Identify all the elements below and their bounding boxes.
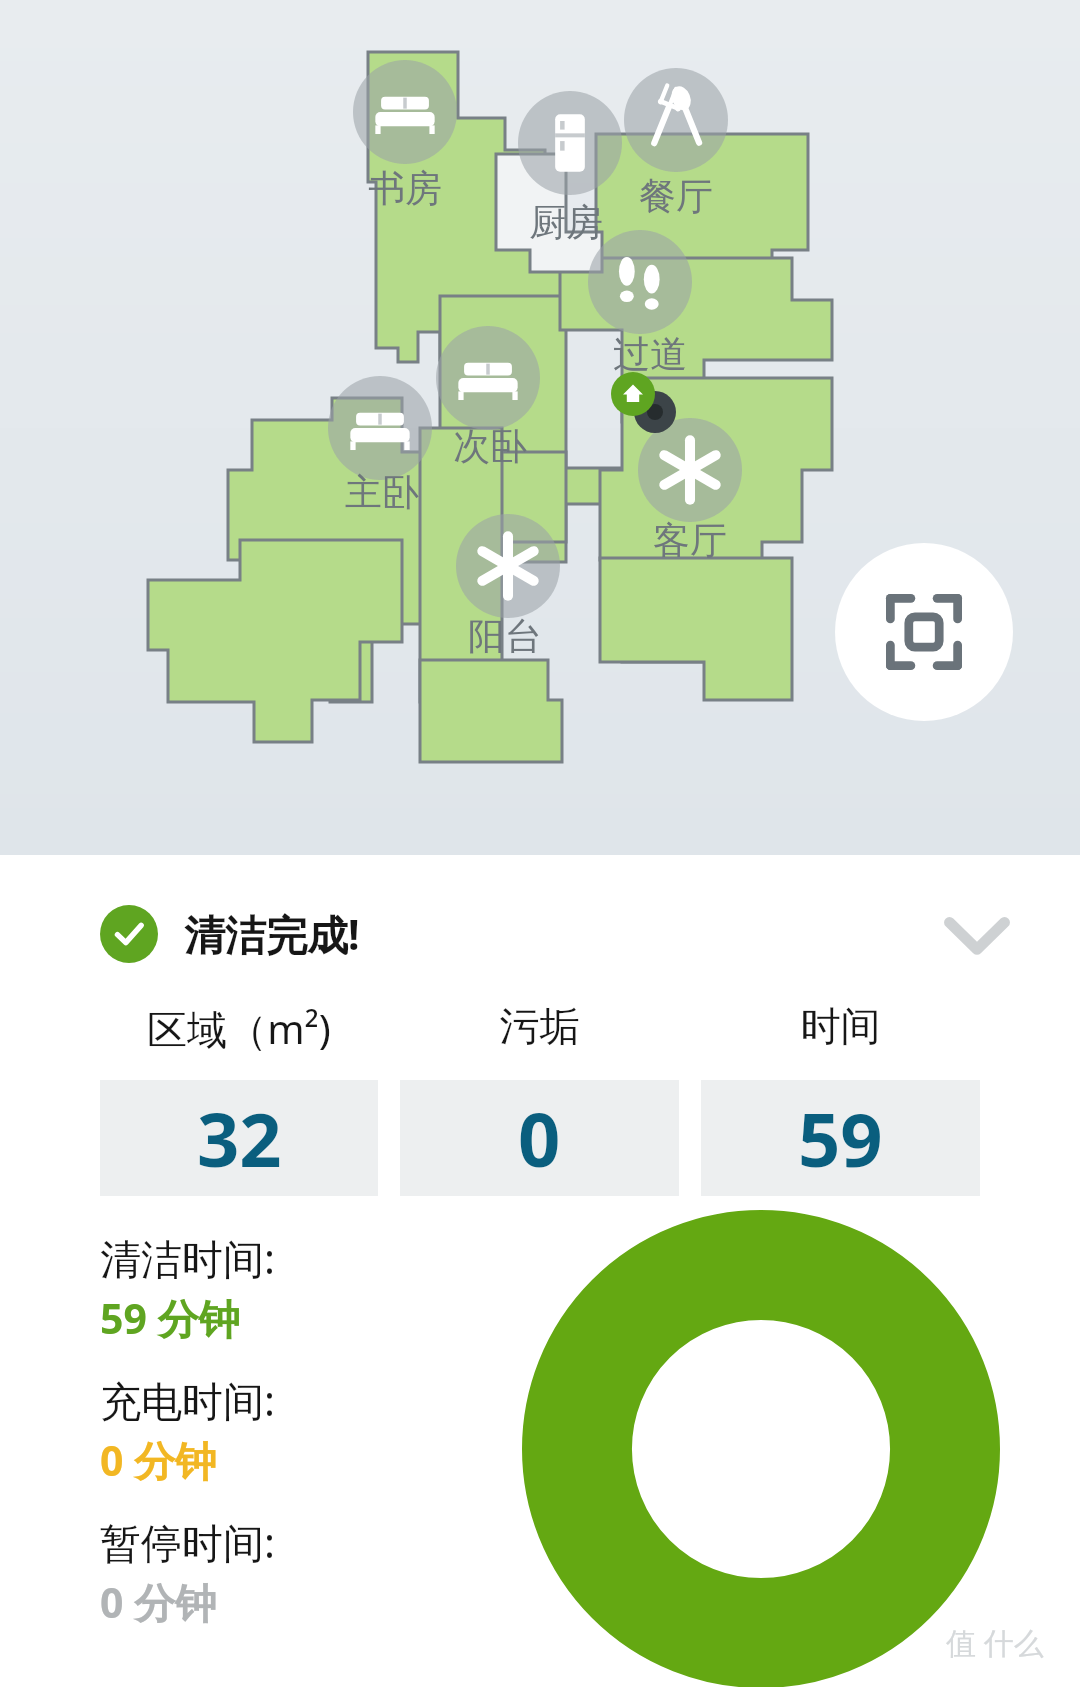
button[interactable]: 餐厅 (606, 168, 746, 224)
button[interactable]: 次卧 (420, 418, 560, 474)
staticText: 值 什么 (946, 1622, 1044, 1663)
button[interactable]: 厨房 (496, 194, 636, 250)
staticText: 厨房 (529, 199, 603, 246)
staticText: 书房 (368, 165, 442, 212)
staticText: 次卧 (453, 423, 527, 470)
button[interactable]: 过道 (580, 326, 720, 382)
button[interactable]: 客厅 (620, 512, 760, 568)
button[interactable]: 32 (100, 1080, 378, 1196)
staticText: 59 (798, 1088, 883, 1189)
button[interactable]: 暂停时间: (100, 1514, 275, 1630)
button[interactable]: 0 (400, 1080, 679, 1196)
button[interactable]: 主卧 (312, 464, 452, 520)
staticText: 主卧 (345, 469, 419, 516)
staticText: 59 分钟 (100, 1290, 240, 1346)
staticText: 0 分钟 (100, 1574, 217, 1630)
staticText: 清洁完成! (184, 906, 360, 962)
staticText: 充电时间: (100, 1372, 275, 1428)
staticText: 0 分钟 (100, 1432, 217, 1488)
staticText: 0 (518, 1088, 561, 1189)
staticText: 32 (197, 1088, 282, 1189)
button[interactable]: Fit map to screen (835, 543, 1013, 721)
button[interactable]: Collapse details (929, 891, 1025, 977)
staticText: 污垢 (400, 1001, 679, 1051)
button[interactable]: 书房 (335, 160, 475, 216)
staticText: 客厅 (653, 517, 727, 564)
staticText: 时间 (701, 1001, 980, 1051)
staticText: 餐厅 (639, 173, 713, 220)
button[interactable]: 充电时间: (100, 1372, 275, 1488)
staticText: 暂停时间: (100, 1514, 275, 1570)
staticText: 区域（m²) (100, 1001, 378, 1056)
button[interactable]: 清洁时间: (100, 1230, 275, 1346)
staticText: 过道 (613, 331, 687, 378)
staticText: 清洁时间: (100, 1230, 275, 1286)
button[interactable]: 阳台 (435, 608, 575, 664)
button[interactable]: Cleaning complete (100, 905, 158, 963)
button[interactable]: 59 (701, 1080, 980, 1196)
staticText: 阳台 (468, 613, 542, 660)
